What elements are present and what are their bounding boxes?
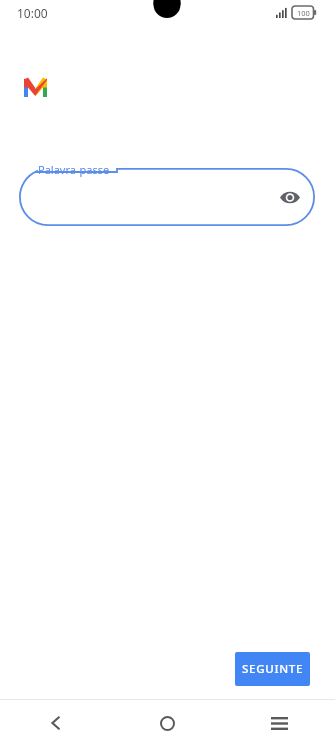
staticText: 10:00	[17, 5, 48, 21]
staticText: Palavra-passe	[38, 162, 110, 177]
staticText: 100	[297, 8, 310, 18]
button[interactable]: SEGUINTE	[235, 652, 310, 686]
button[interactable]: Back	[0, 700, 111, 746]
button[interactable]: Home	[111, 700, 223, 746]
button[interactable]: Mostrar palavra-passe	[273, 180, 307, 214]
button[interactable]: Recent apps	[223, 700, 335, 746]
button[interactable]: Palavra-passe	[19, 168, 315, 226]
staticText: SEGUINTE	[242, 661, 304, 677]
